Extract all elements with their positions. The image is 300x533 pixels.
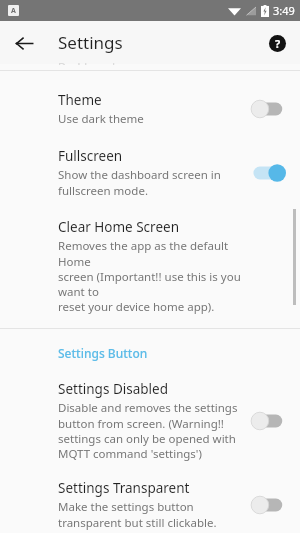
button[interactable]: Back xyxy=(5,24,43,62)
button[interactable]: Clear Home Screen xyxy=(0,218,300,314)
staticText: Use dark theme xyxy=(58,111,144,127)
staticText: Show the dashboard screen in fullscreen … xyxy=(58,167,221,198)
button[interactable]: Settings Disabled xyxy=(0,380,300,461)
staticText: Make the settings button transparent but… xyxy=(58,499,217,530)
button[interactable]: Off xyxy=(252,410,288,432)
button[interactable]: Fullscreen xyxy=(0,147,300,198)
staticText: Fullscreen xyxy=(58,147,123,165)
button[interactable]: Off xyxy=(252,98,288,120)
staticText: Settings xyxy=(58,31,123,54)
staticText: Removes the app as the default Home scre… xyxy=(58,238,244,314)
staticText: Settings Button xyxy=(58,345,148,361)
staticText: Settings Transparent xyxy=(58,479,190,497)
staticText: A xyxy=(11,6,16,16)
staticText: Dashboard xyxy=(58,59,115,65)
staticText: Theme xyxy=(58,91,102,109)
button[interactable]: Theme xyxy=(0,91,300,127)
staticText: 3:49 xyxy=(273,3,295,18)
staticText: Clear Home Screen xyxy=(58,218,179,236)
button[interactable]: Help xyxy=(260,26,294,60)
button[interactable]: Settings Transparent xyxy=(0,479,300,530)
staticText: ? xyxy=(275,36,281,51)
staticText: Settings Disabled xyxy=(58,380,168,398)
button[interactable]: Off xyxy=(252,494,288,516)
button[interactable]: On xyxy=(252,162,288,184)
staticText: Disable and removes the settings button … xyxy=(58,400,238,461)
